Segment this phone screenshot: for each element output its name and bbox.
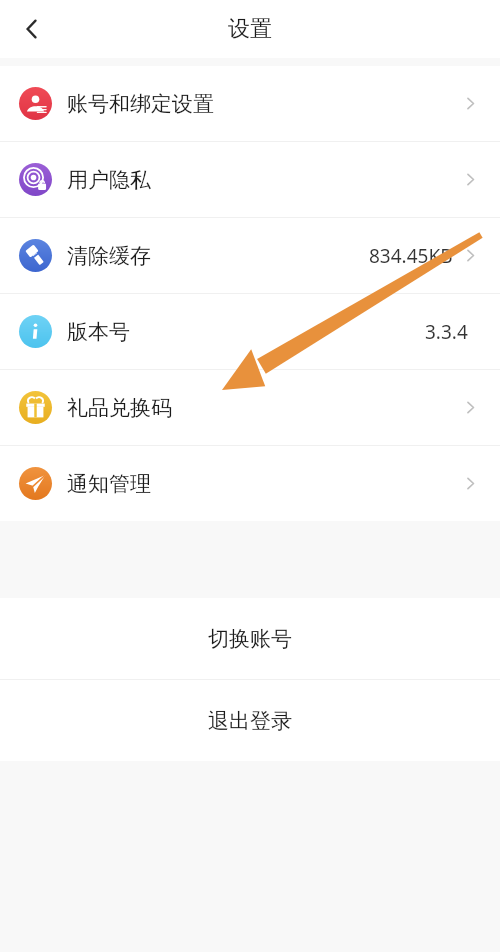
staticText: 版本号 — [67, 319, 130, 345]
staticText: 退出登录 — [208, 708, 292, 734]
button[interactable]: 礼品兑换码 — [0, 370, 500, 446]
staticText: 礼品兑换码 — [67, 395, 172, 421]
staticText: 用户隐私 — [67, 167, 151, 193]
button[interactable]: 版本号 — [0, 294, 500, 370]
button[interactable]: 用户隐私 — [0, 142, 500, 218]
button[interactable]: 通知管理 — [0, 446, 500, 521]
staticText: 3.3.4 — [425, 319, 468, 345]
staticText: 834.45KB — [369, 243, 453, 269]
button[interactable]: 账号和绑定设置 — [0, 66, 500, 142]
staticText: 账号和绑定设置 — [67, 91, 214, 117]
button[interactable]: Back — [10, 7, 54, 51]
staticText: 设置 — [228, 15, 272, 43]
staticText: 切换账号 — [208, 626, 292, 652]
button[interactable]: 退出登录 — [0, 680, 500, 761]
button[interactable]: 清除缓存 — [0, 218, 500, 294]
button[interactable]: 切换账号 — [0, 598, 500, 679]
staticText: 通知管理 — [67, 471, 151, 497]
staticText: 清除缓存 — [67, 243, 151, 269]
